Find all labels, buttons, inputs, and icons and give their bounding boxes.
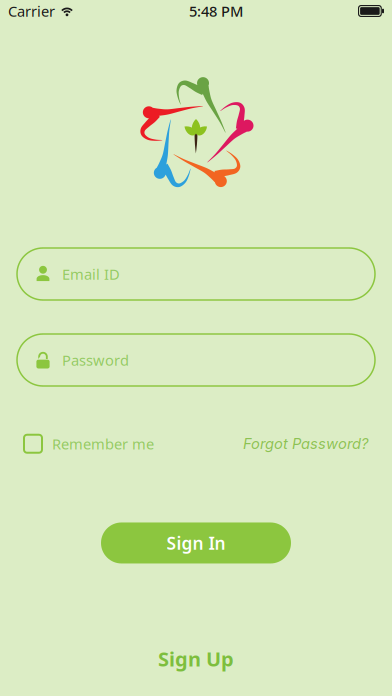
staticText: Forgot Password?: [243, 435, 368, 453]
button[interactable]: Sign Up: [158, 645, 234, 672]
staticText: Remember me: [52, 434, 154, 453]
button[interactable]: Sign In: [101, 522, 291, 563]
staticText: Carrier: [8, 1, 55, 21]
staticText: Email ID: [62, 264, 120, 284]
staticText: Password: [62, 350, 129, 370]
button[interactable]: Email ID: [0, 248, 392, 300]
staticText: Sign Up: [158, 645, 234, 672]
button[interactable]: Remember me: [24, 434, 154, 453]
staticText: 5:48 PM: [189, 1, 243, 21]
staticText: Sign In: [166, 531, 225, 554]
button[interactable]: Forgot Password?: [243, 435, 368, 453]
button[interactable]: Password: [0, 334, 392, 386]
